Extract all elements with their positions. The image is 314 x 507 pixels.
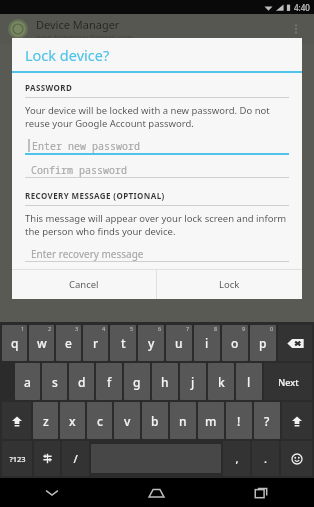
button[interactable]: h <box>152 363 178 400</box>
staticText: f <box>107 374 112 390</box>
button[interactable]: Enter recovery message <box>25 246 289 262</box>
staticText: s <box>52 374 58 390</box>
button[interactable]: t <box>110 325 136 361</box>
staticText: v <box>124 413 131 429</box>
button[interactable]: Hide keyboard <box>0 478 104 507</box>
button[interactable]: m <box>198 402 224 439</box>
staticText: n <box>179 413 187 429</box>
button[interactable]: ! <box>226 402 252 439</box>
staticText: Lock device? <box>25 45 110 65</box>
staticText: 4:40 <box>294 2 310 13</box>
button[interactable]: a <box>15 363 40 400</box>
staticText: / <box>73 451 78 466</box>
button[interactable]: Confirm password <box>25 162 289 178</box>
staticText: Device Manager <box>36 17 120 32</box>
staticText: PASSWORD <box>25 82 73 93</box>
button[interactable]: Emoji <box>281 441 312 476</box>
button[interactable]: Change keyboard <box>34 441 60 476</box>
staticText: 3 <box>75 325 79 332</box>
staticText: RECOVERY MESSAGE (OPTIONAL) <box>25 190 165 201</box>
button[interactable]: f <box>96 363 122 400</box>
staticText: Confirm password <box>31 163 127 177</box>
staticText: k <box>218 374 225 390</box>
button[interactable]: d <box>69 363 94 400</box>
staticText: h <box>161 374 169 390</box>
staticText: , <box>235 451 239 466</box>
staticText: u <box>175 335 183 351</box>
staticText: 7 <box>186 325 190 332</box>
button[interactable]: o <box>222 325 248 361</box>
staticText: t <box>121 335 126 351</box>
button[interactable]: c <box>87 402 112 439</box>
button[interactable]: Next <box>264 363 312 400</box>
button[interactable]: z <box>33 402 58 439</box>
staticText: l <box>247 374 251 390</box>
staticText: Enter new password <box>32 139 140 153</box>
staticText: . <box>264 451 267 466</box>
button[interactable]: j <box>180 363 206 400</box>
button[interactable]: Home <box>104 478 209 507</box>
button[interactable]: n <box>170 402 196 439</box>
staticText: 5 <box>130 325 134 332</box>
staticText: ryan.fortyniner@gmail.com <box>36 32 133 42</box>
button[interactable]: i <box>194 325 220 361</box>
staticText: o <box>231 335 239 351</box>
button[interactable]: Lock <box>157 270 302 299</box>
button[interactable]: e <box>56 325 81 361</box>
button[interactable]: ?123 <box>2 441 32 476</box>
button[interactable]: s <box>42 363 67 400</box>
button[interactable]: Enter new password <box>25 138 289 155</box>
staticText: 0 <box>270 325 274 332</box>
staticText: Your device will be locked with a new pa… <box>25 104 289 130</box>
button[interactable]: More options <box>286 19 306 39</box>
button[interactable]: Shift <box>282 402 312 439</box>
button[interactable]: / <box>62 441 89 476</box>
staticText: b <box>151 413 159 429</box>
staticText: p <box>259 335 267 351</box>
staticText: w <box>37 335 47 351</box>
staticText: d <box>78 374 86 390</box>
button[interactable]: Backspace <box>278 325 312 361</box>
staticText: 6 <box>158 325 162 332</box>
staticText: 8 <box>214 325 218 332</box>
staticText: ?123 <box>9 454 26 464</box>
button[interactable]: q <box>2 325 27 361</box>
staticText: 2 <box>48 325 52 332</box>
staticText: m <box>205 413 217 429</box>
button[interactable]: Shift <box>2 402 31 439</box>
staticText: x <box>69 413 76 429</box>
staticText: Lock <box>219 278 240 291</box>
button[interactable]: . <box>252 441 279 476</box>
button[interactable]: v <box>114 402 140 439</box>
staticText: a <box>24 374 31 390</box>
staticText: q <box>11 335 19 351</box>
staticText: ? <box>264 413 270 429</box>
staticText: c <box>97 413 103 429</box>
staticText: e <box>65 335 72 351</box>
button[interactable]: y <box>138 325 164 361</box>
button[interactable]: k <box>208 363 234 400</box>
staticText: y <box>148 335 155 351</box>
staticText: g <box>133 374 141 390</box>
button[interactable]: x <box>60 402 85 439</box>
button[interactable]: l <box>236 363 262 400</box>
staticText: 9 <box>242 325 246 332</box>
button[interactable]: p <box>250 325 276 361</box>
staticText: 4 <box>102 325 106 332</box>
staticText: Cancel <box>69 278 99 291</box>
button[interactable]: r <box>83 325 108 361</box>
button[interactable]: w <box>29 325 54 361</box>
button[interactable]: u <box>166 325 192 361</box>
button[interactable]: b <box>142 402 168 439</box>
staticText: 1 <box>21 325 25 332</box>
staticText: r <box>93 335 99 351</box>
staticText: j <box>191 374 195 390</box>
button[interactable]: g <box>124 363 150 400</box>
button[interactable]: Cancel <box>12 270 156 299</box>
staticText: i <box>205 335 209 351</box>
button[interactable]: , <box>223 441 250 476</box>
button[interactable]: ? <box>254 402 280 439</box>
button[interactable]: Recent apps <box>209 478 314 507</box>
staticText: Next <box>278 376 299 388</box>
